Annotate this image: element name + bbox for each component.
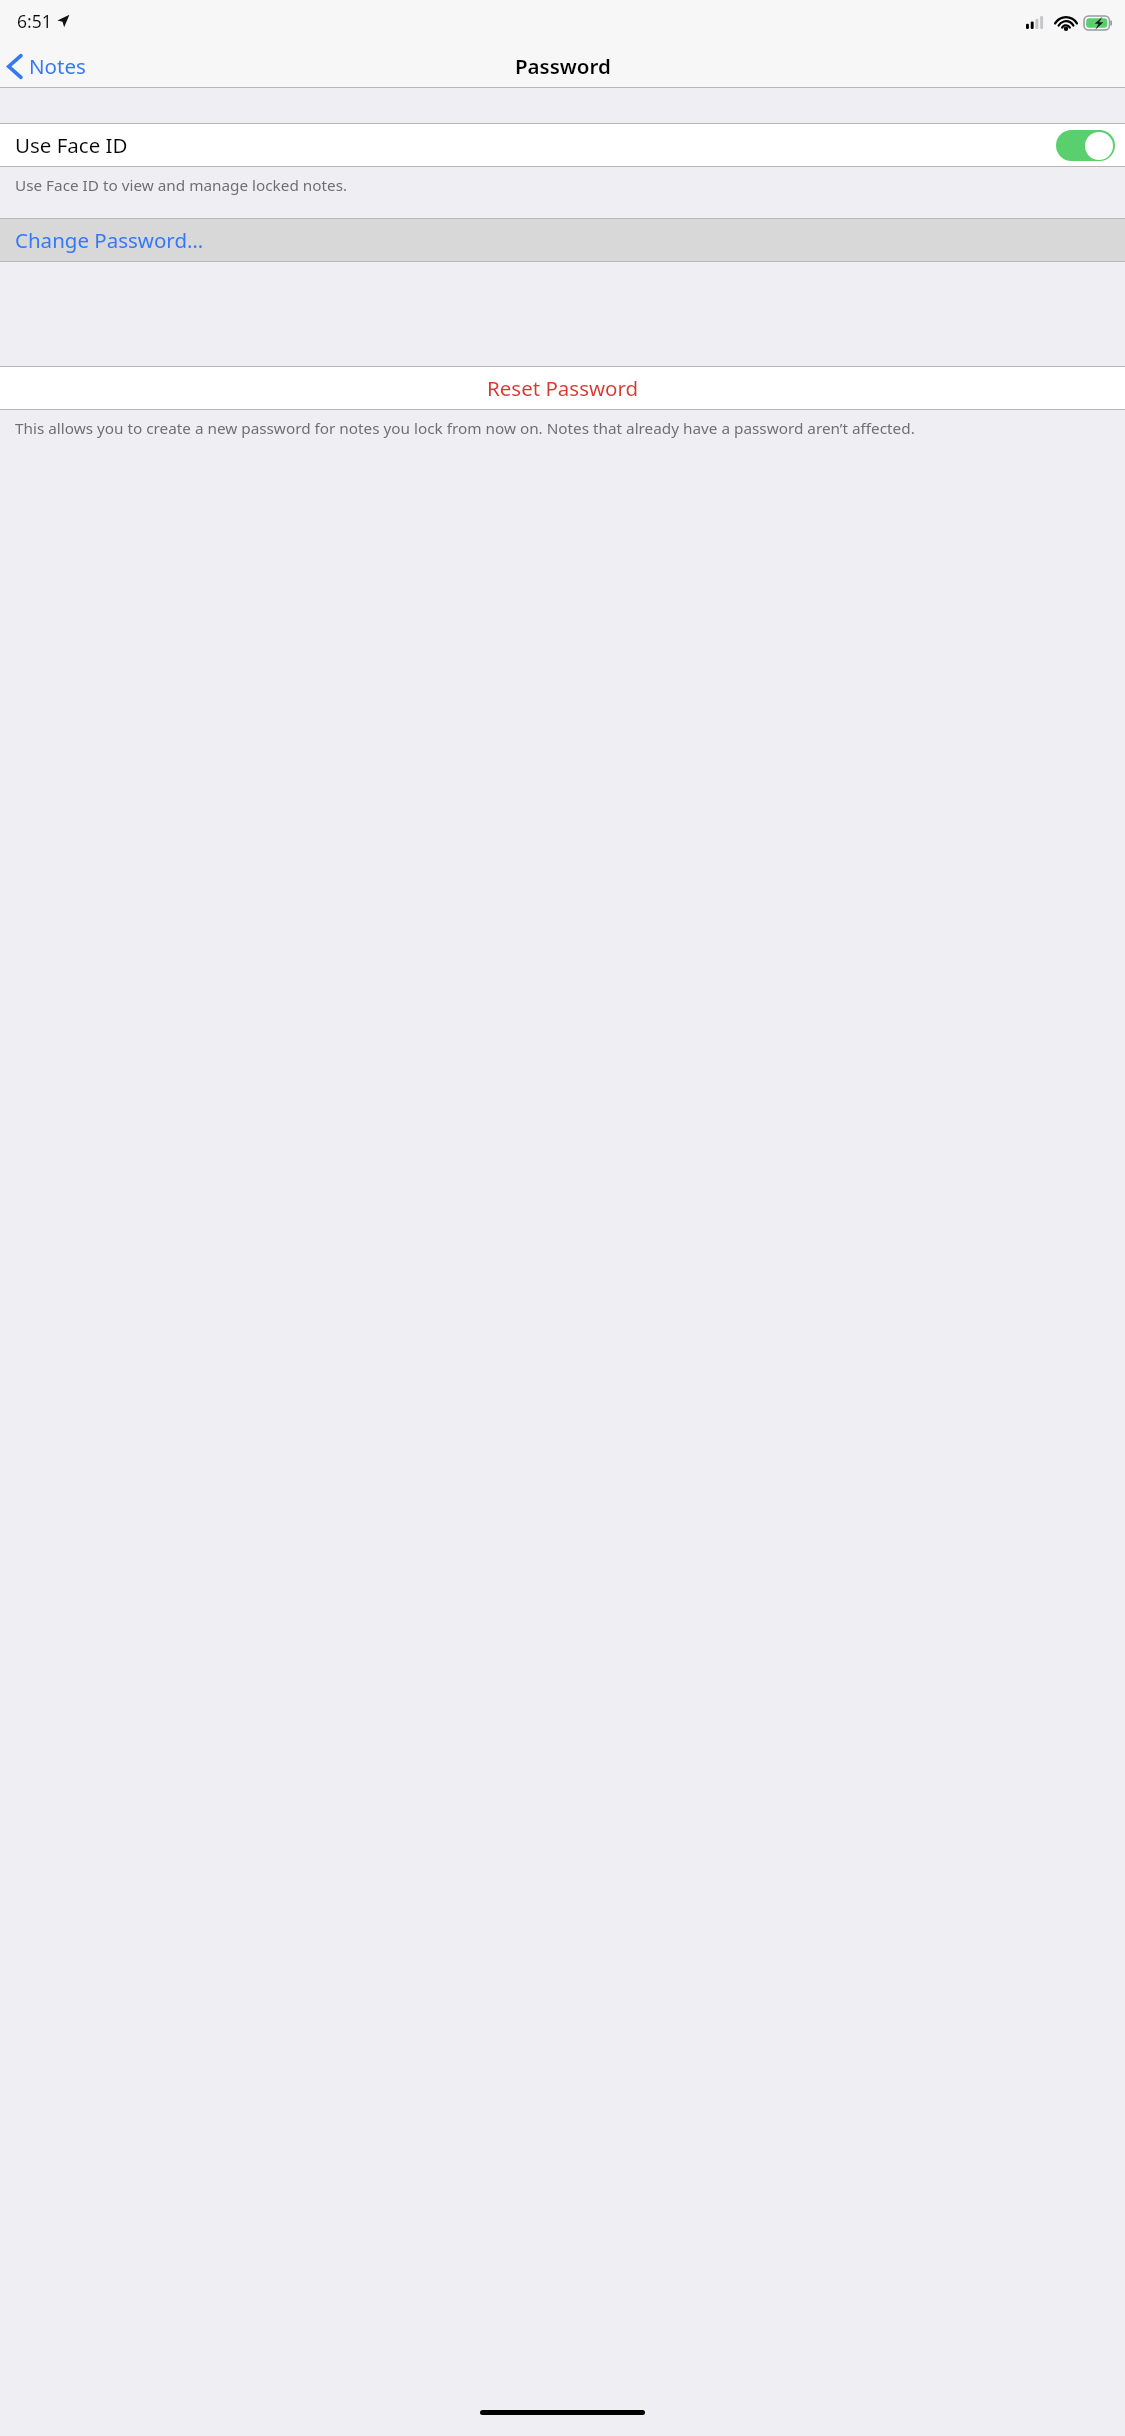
button[interactable]: Change Password…: [0, 218, 1125, 262]
staticText: Password: [515, 52, 611, 80]
button[interactable]: Back: [0, 48, 98, 84]
staticText: Notes: [29, 52, 86, 80]
button[interactable]: Use Face ID: [0, 123, 1125, 167]
staticText: Change Password…: [15, 226, 204, 254]
staticText: Use Face ID to view and manage locked no…: [15, 175, 348, 196]
other: Back: [6, 53, 23, 80]
staticText: This allows you to create a new password…: [15, 418, 915, 439]
staticText: Use Face ID: [15, 131, 128, 159]
staticText: Reset Password: [487, 374, 639, 402]
staticText: 6:51: [17, 9, 52, 33]
button[interactable]: Reset Password: [0, 366, 1125, 410]
button[interactable]: Use Face ID toggle: [1056, 130, 1115, 161]
